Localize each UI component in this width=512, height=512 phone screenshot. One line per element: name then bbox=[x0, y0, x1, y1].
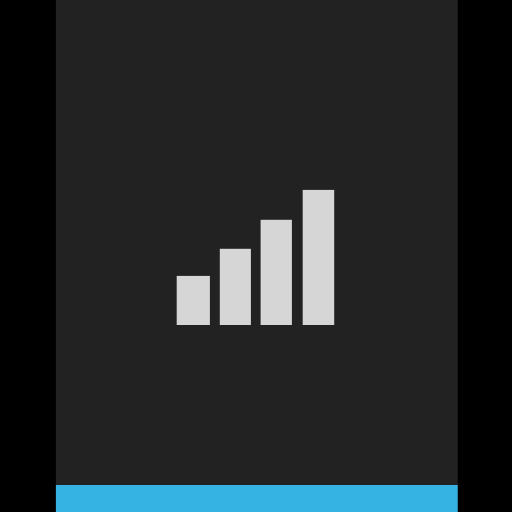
button[interactable]: Statistics bbox=[56, 485, 458, 512]
